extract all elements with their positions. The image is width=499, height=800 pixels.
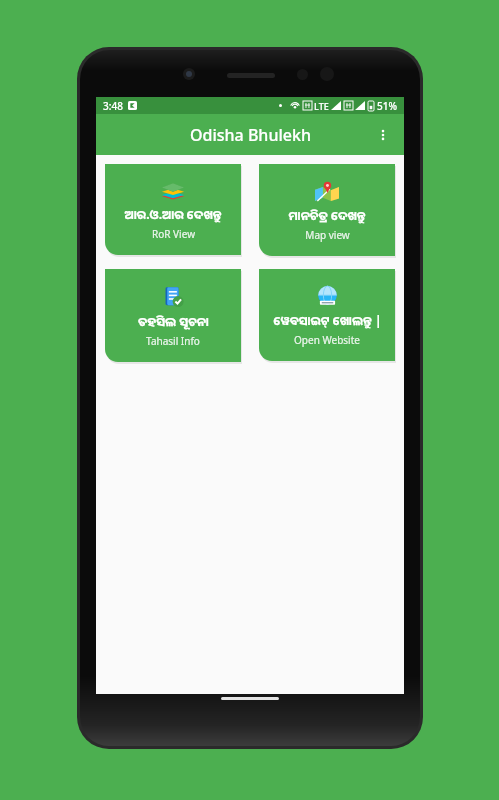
- staticText: Open Website: [294, 333, 360, 347]
- staticText: LTE: [314, 100, 329, 112]
- staticText: ୱେବସାଇଟ୍ ଖୋଲନ୍ତୁ |: [273, 312, 382, 328]
- staticText: RoR View: [152, 227, 195, 241]
- staticText: ମାନଚିତ୍ର ଦେଖନ୍ତୁ: [288, 207, 366, 223]
- button[interactable]: Map view: [259, 164, 395, 256]
- button[interactable]: Tahasil Info: [105, 269, 241, 362]
- staticText: 3:48: [103, 99, 123, 113]
- staticText: Odisha Bhulekh: [190, 124, 311, 146]
- staticText: ତହସିଲ ସୂଚନା: [138, 313, 209, 329]
- staticText: ଆର.ଓ.ଆର ଦେଖନ୍ତୁ: [124, 206, 222, 222]
- staticText: Map view: [305, 228, 350, 242]
- button[interactable]: RoR View: [105, 164, 241, 255]
- button[interactable]: Open Website: [259, 269, 395, 361]
- staticText: 51%: [377, 99, 397, 113]
- staticText: Tahasil Info: [146, 334, 200, 348]
- button[interactable]: More options: [368, 120, 398, 150]
